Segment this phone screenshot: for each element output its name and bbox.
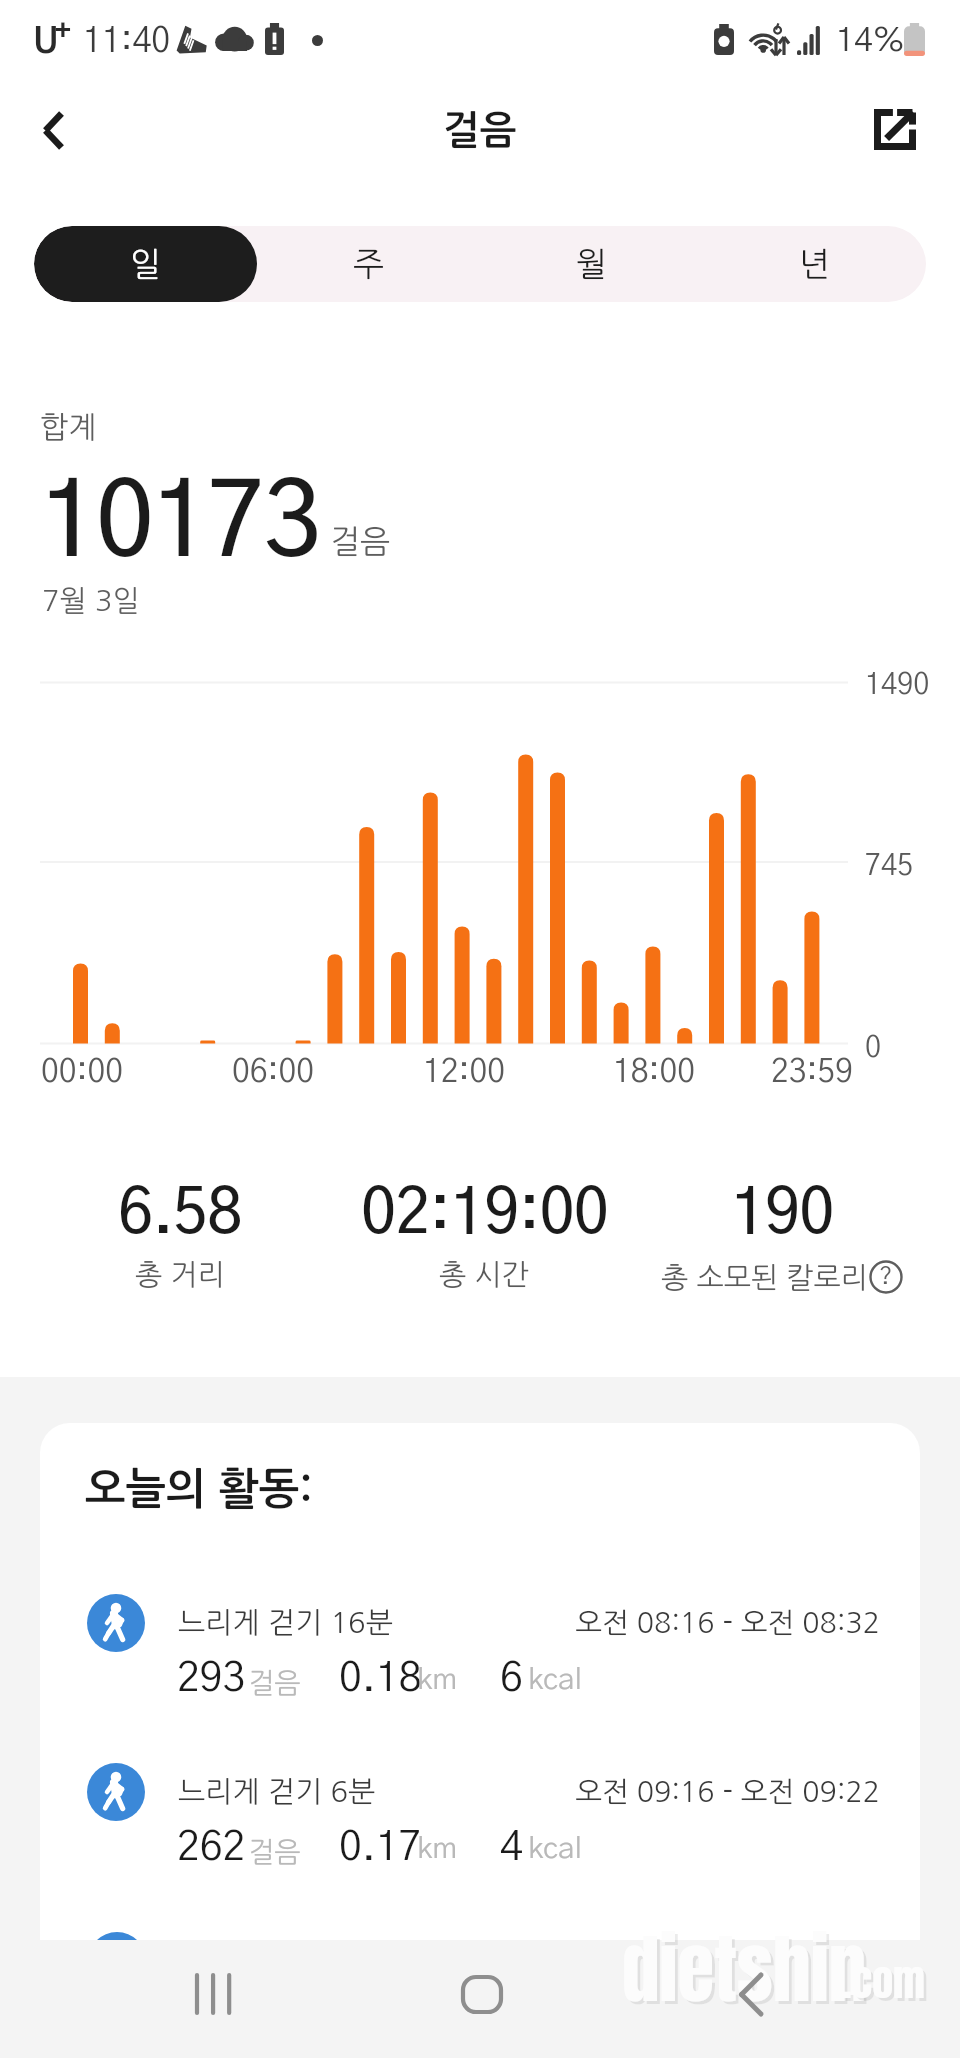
staticText: 4 — [500, 1827, 523, 1868]
staticText: dietshin — [625, 1916, 870, 2029]
button[interactable] — [80, 1753, 880, 1873]
staticText: 10173 — [40, 473, 320, 576]
button[interactable]: Home — [420, 1932, 544, 2056]
staticText: 느리게 걷기 6분 — [178, 1777, 376, 1806]
button[interactable]: Recent apps — [151, 1932, 275, 2056]
button[interactable]: Back — [5, 82, 101, 178]
staticText: 745 — [865, 852, 914, 881]
staticText: 0.18 — [339, 1658, 422, 1699]
staticText: 오늘의 활동: — [85, 1468, 313, 1511]
staticText: 오전 08:16 - 오전 08:32 — [400, 1609, 880, 1637]
staticText: 06:00 — [232, 1056, 315, 1088]
staticText: 합계 — [40, 412, 97, 442]
staticText: .com — [845, 1952, 928, 2015]
staticText: .com — [842, 1949, 925, 2012]
staticText: 느리게 걷기 16분 — [178, 1608, 393, 1637]
staticText: 190 — [731, 1184, 834, 1246]
button[interactable]: 6.58 — [0, 1184, 380, 1289]
staticText: 오전 09:16 - 오전 09:22 — [400, 1778, 880, 1806]
staticText: 02:19:00 — [361, 1184, 608, 1246]
staticText: 일 — [130, 248, 162, 281]
staticText: 걸음 — [248, 1838, 301, 1866]
button[interactable]: 년 — [703, 226, 926, 302]
button[interactable]: 월 — [480, 226, 703, 302]
staticText: 6 — [500, 1658, 523, 1699]
staticText: + — [55, 18, 71, 45]
staticText: 주 — [353, 248, 385, 281]
staticText: 0.17 — [339, 1827, 422, 1868]
staticText: 총 소모된 칼로리 — [661, 1263, 869, 1292]
staticText: kcal — [528, 1665, 583, 1695]
button[interactable]: 02:19:00 — [284, 1184, 684, 1289]
staticText: 7월 3일 — [42, 586, 140, 615]
staticText: 총 시간 — [439, 1260, 529, 1289]
staticText: 걸음 — [443, 111, 517, 150]
staticText: 년 — [799, 248, 831, 281]
staticText: 걸음 — [330, 526, 391, 558]
staticText: 23:59 — [771, 1056, 854, 1088]
staticText: 18:00 — [613, 1056, 696, 1088]
button[interactable]: 190 — [582, 1184, 960, 1294]
staticText: 총 거리 — [135, 1260, 225, 1289]
staticText: 00:00 — [41, 1056, 124, 1088]
staticText: ? — [879, 1265, 893, 1289]
button[interactable]: Back — [688, 1932, 812, 2056]
staticText: 293 — [177, 1658, 246, 1699]
button[interactable]: 일 — [34, 226, 257, 302]
button[interactable] — [80, 1584, 880, 1704]
staticText: 1490 — [865, 671, 930, 700]
button[interactable]: 주 — [257, 226, 480, 302]
staticText: km — [417, 1834, 458, 1864]
staticText: km — [417, 1665, 458, 1695]
staticText: 11:40 — [83, 25, 171, 59]
staticText: 0 — [865, 1034, 882, 1063]
staticText: 12:00 — [423, 1056, 506, 1088]
staticText: kcal — [528, 1834, 583, 1864]
staticText: 6.58 — [118, 1184, 242, 1246]
button[interactable]: Share — [847, 81, 943, 177]
staticText: U — [33, 25, 59, 60]
staticText: 14% — [836, 25, 905, 58]
staticText: 262 — [177, 1827, 246, 1868]
staticText: dietshin — [622, 1913, 867, 2026]
staticText: 걸음 — [248, 1669, 301, 1697]
staticText: 월 — [576, 248, 608, 281]
